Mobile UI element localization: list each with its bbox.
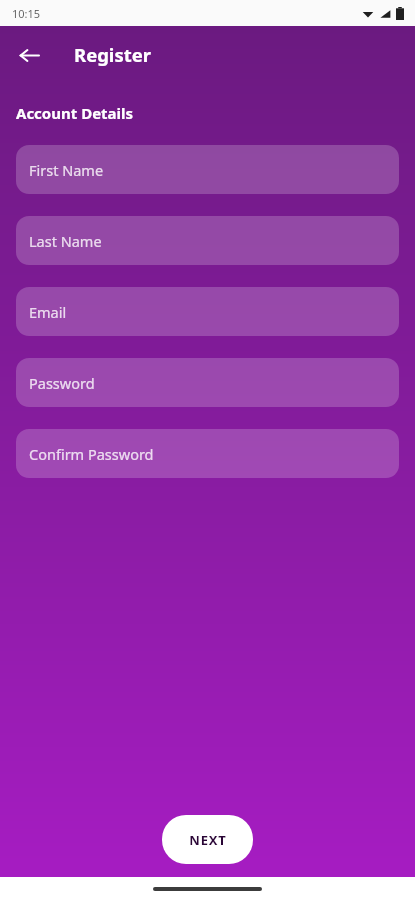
button[interactable]: Last Name	[16, 216, 399, 265]
button[interactable]: First Name	[16, 145, 399, 194]
staticText: Account Details	[16, 103, 134, 123]
button[interactable]: Password	[16, 358, 399, 407]
staticText: Register	[74, 42, 152, 67]
staticText: Confirm Password	[29, 444, 154, 464]
button[interactable]: Email	[16, 287, 399, 336]
staticText: First Name	[29, 160, 104, 180]
staticText: NEXT	[189, 831, 227, 849]
staticText: Email	[29, 302, 67, 322]
staticText: 10:15	[12, 6, 41, 21]
button[interactable]: Back	[10, 36, 48, 74]
button[interactable]: NEXT	[162, 815, 253, 864]
staticText: Password	[29, 373, 95, 393]
staticText: Last Name	[29, 231, 102, 251]
button[interactable]: Confirm Password	[16, 429, 399, 478]
